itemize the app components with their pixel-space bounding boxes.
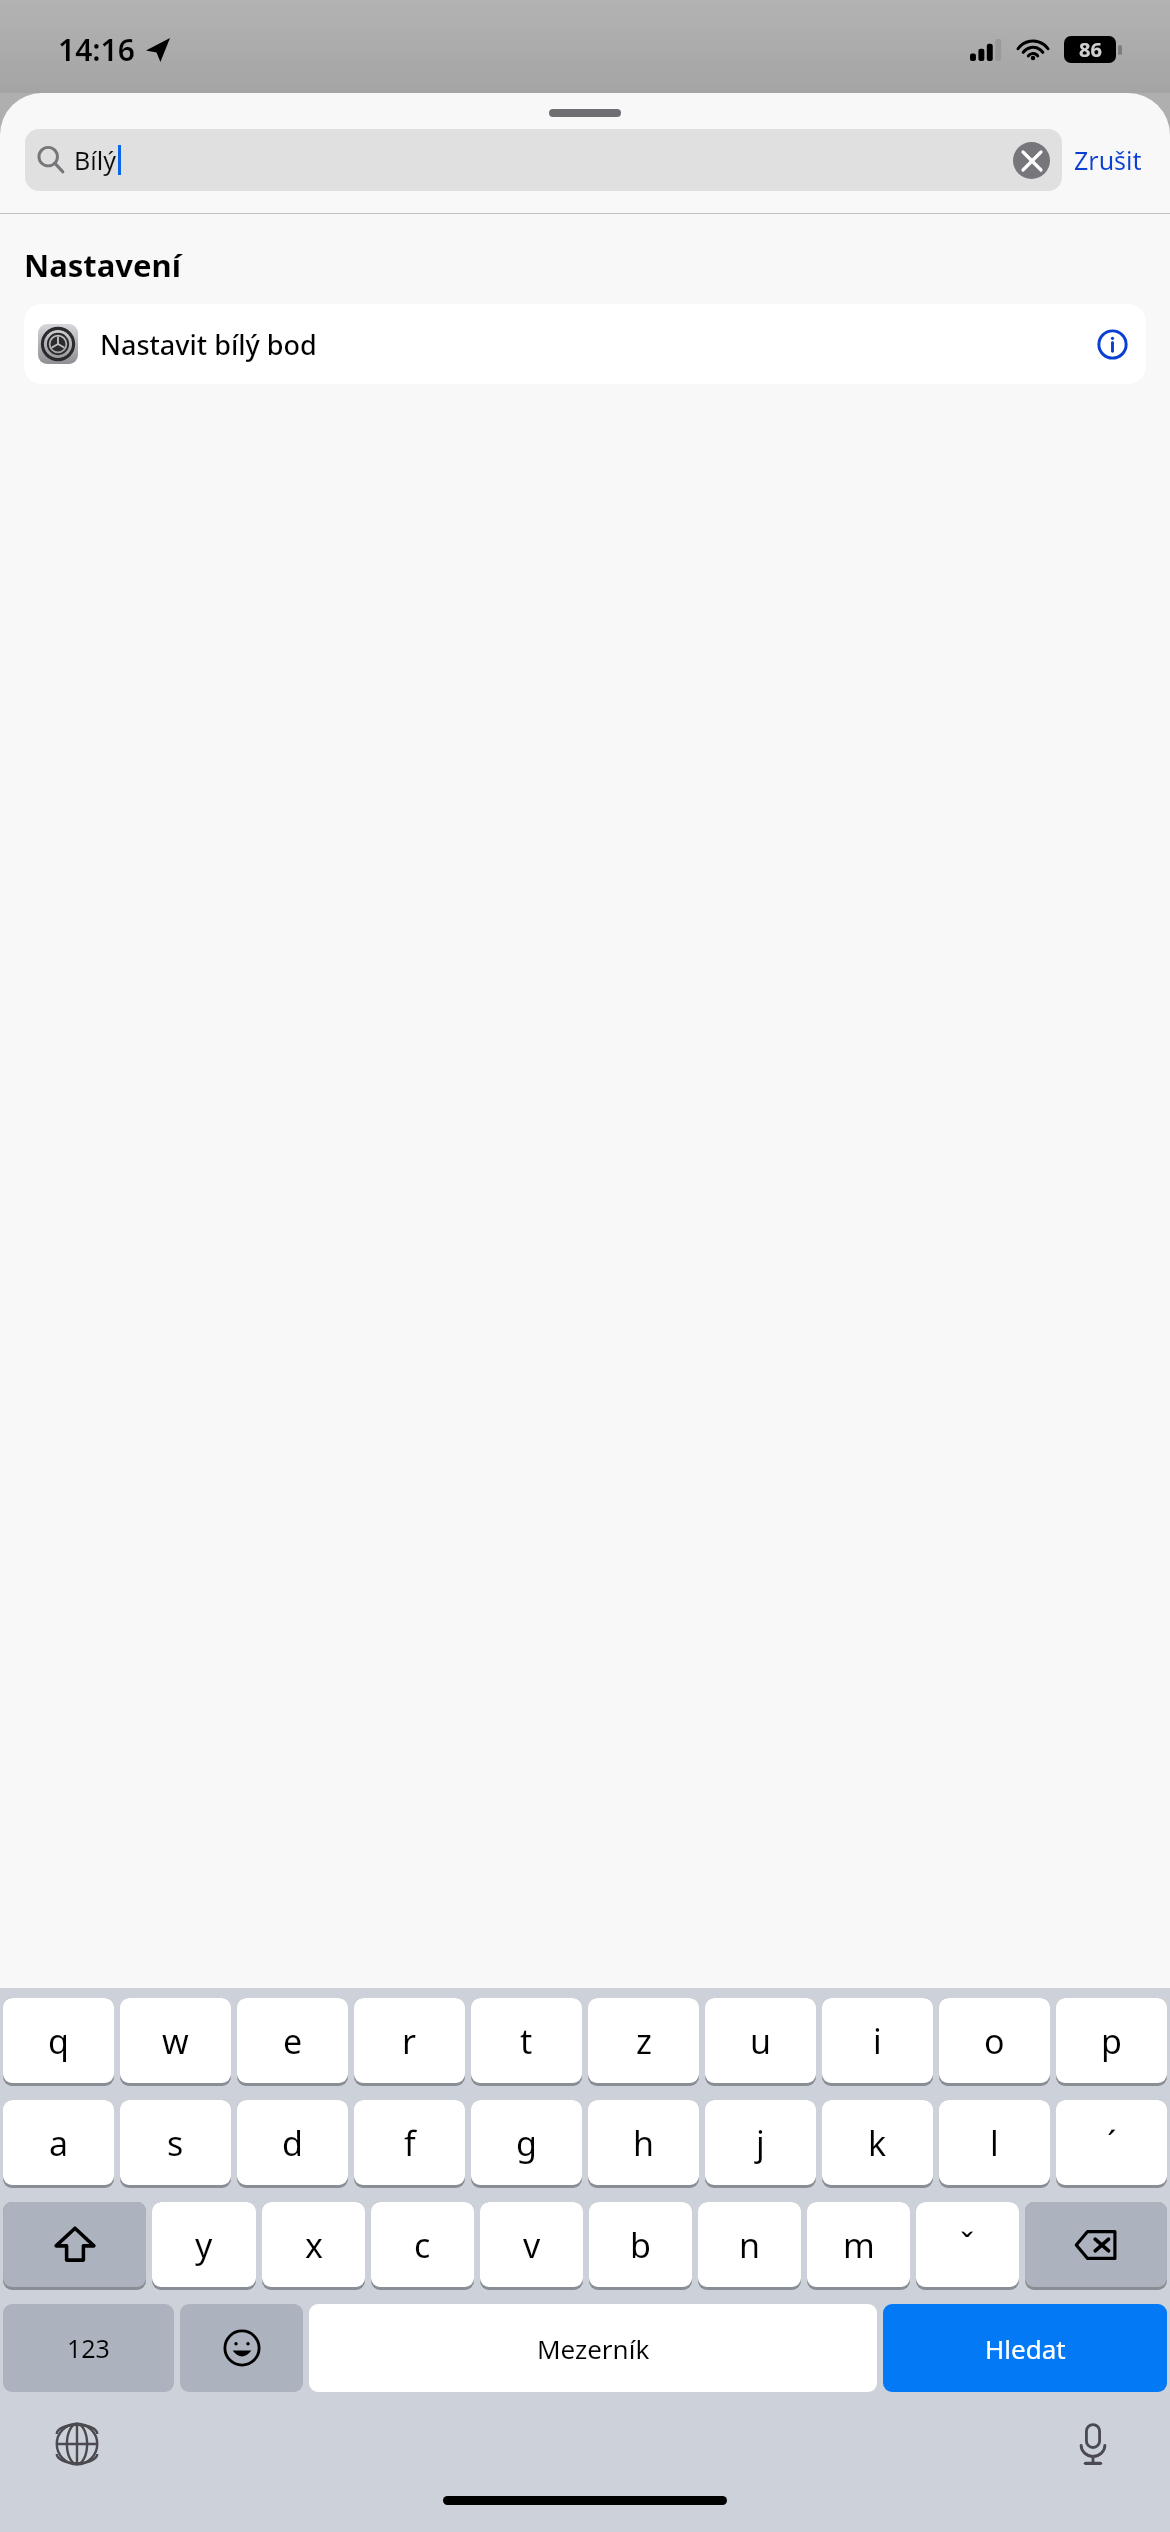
button[interactable]: g — [471, 2100, 582, 2185]
staticText: z — [636, 2018, 652, 2064]
staticText: Mezerník — [537, 2331, 650, 2366]
button[interactable]: Dictation — [1064, 2415, 1122, 2473]
staticText: t — [520, 2018, 533, 2064]
staticText: n — [739, 2222, 761, 2268]
staticText: 86 — [1079, 36, 1102, 63]
staticText: v — [523, 2222, 541, 2268]
button[interactable]: x — [262, 2202, 365, 2287]
staticText: p — [1101, 2018, 1122, 2064]
staticText: Bílý — [74, 143, 116, 177]
staticText: g — [516, 2120, 537, 2166]
button[interactable]: w — [120, 1998, 231, 2083]
button[interactable]: z — [588, 1998, 699, 2083]
button[interactable]: h — [588, 2100, 699, 2185]
staticText: f — [404, 2120, 416, 2166]
staticText: h — [633, 2120, 655, 2166]
staticText: y — [195, 2222, 213, 2268]
button[interactable]: e — [237, 1998, 348, 2083]
staticText: w — [162, 2018, 189, 2064]
staticText: q — [48, 2018, 69, 2064]
staticText: u — [750, 2018, 772, 2064]
button[interactable]: Backspace — [1025, 2202, 1167, 2287]
button[interactable]: v — [480, 2202, 583, 2287]
staticText: Hledat — [985, 2331, 1066, 2366]
button[interactable]: Change keyboard — [48, 2415, 106, 2473]
button[interactable]: ´ — [1056, 2100, 1167, 2185]
button[interactable]: Hledat — [883, 2304, 1167, 2392]
button[interactable]: s — [120, 2100, 231, 2185]
button[interactable]: ˇ — [916, 2202, 1019, 2287]
staticText: ˇ — [960, 2222, 975, 2268]
staticText: 123 — [67, 2331, 110, 2365]
button[interactable]: b — [589, 2202, 692, 2287]
button[interactable]: Emoji — [180, 2304, 303, 2392]
button[interactable]: i — [822, 1998, 933, 2083]
button[interactable]: r — [354, 1998, 465, 2083]
button[interactable]: a — [3, 2100, 114, 2185]
staticText: r — [402, 2018, 417, 2064]
button[interactable]: 123 — [3, 2304, 174, 2392]
staticText: d — [282, 2120, 303, 2166]
button[interactable]: Bílý — [25, 129, 1062, 191]
button[interactable]: l — [939, 2100, 1050, 2185]
button[interactable]: More info — [1092, 324, 1132, 364]
button[interactable]: Nastavit bílý bod — [24, 304, 1146, 384]
staticText: x — [305, 2222, 323, 2268]
staticText: ´ — [1107, 2120, 1117, 2166]
staticText: s — [167, 2120, 184, 2166]
staticText: Zrušit — [1074, 143, 1142, 177]
button[interactable]: Zrušit — [1062, 135, 1154, 185]
staticText: k — [868, 2120, 887, 2166]
button[interactable]: c — [371, 2202, 474, 2287]
button[interactable]: y — [152, 2202, 256, 2287]
staticText: Nastavit bílý bod — [100, 326, 317, 363]
button[interactable]: u — [705, 1998, 816, 2083]
button[interactable]: p — [1056, 1998, 1167, 2083]
staticText: o — [984, 2018, 1005, 2064]
button[interactable]: j — [705, 2100, 816, 2185]
staticText: a — [49, 2120, 69, 2166]
staticText: b — [630, 2222, 651, 2268]
button[interactable]: f — [354, 2100, 465, 2185]
staticText: l — [990, 2120, 999, 2166]
button[interactable]: d — [237, 2100, 348, 2185]
button[interactable]: t — [471, 1998, 582, 2083]
button[interactable]: m — [807, 2202, 910, 2287]
button[interactable]: q — [3, 1998, 114, 2083]
button[interactable]: k — [822, 2100, 933, 2185]
button[interactable]: n — [698, 2202, 801, 2287]
staticText: j — [756, 2120, 765, 2166]
staticText: c — [414, 2222, 431, 2268]
staticText: e — [283, 2018, 303, 2064]
staticText: i — [873, 2018, 882, 2064]
button[interactable]: o — [939, 1998, 1050, 2083]
staticText: Nastavení — [24, 244, 181, 286]
button[interactable]: Mezerník — [309, 2304, 877, 2392]
staticText: m — [843, 2222, 875, 2268]
button[interactable]: Shift — [3, 2202, 146, 2287]
staticText: 14:16 — [58, 29, 135, 70]
button[interactable]: Clear text — [1013, 142, 1050, 179]
